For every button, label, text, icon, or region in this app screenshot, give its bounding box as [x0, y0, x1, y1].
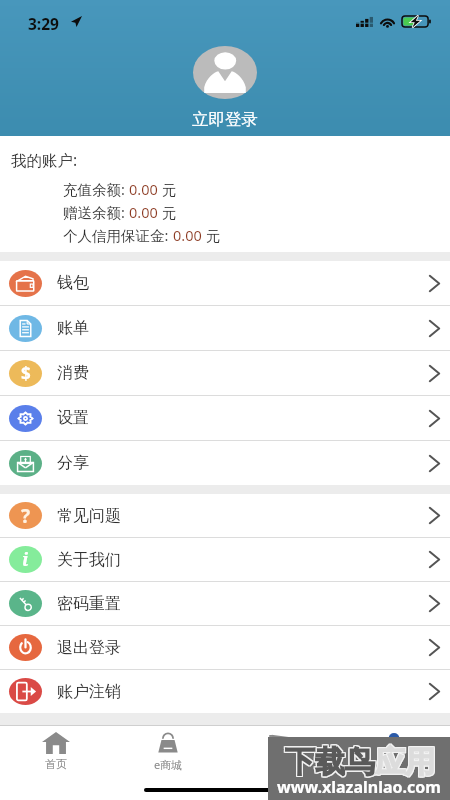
staticText: 充值余额: [63, 179, 129, 199]
button[interactable]: 退出登录 [0, 626, 450, 669]
button[interactable]: 设置 [0, 396, 450, 440]
staticText: 我的账户: [11, 149, 78, 170]
staticText: e商城 [154, 757, 183, 772]
button[interactable]: Login avatar [193, 46, 257, 99]
button[interactable]: 购物车 [224, 726, 337, 800]
staticText: 下载鸟应用 [284, 742, 434, 780]
button[interactable]: 账户注销 [0, 670, 450, 713]
staticText: 赠送余额: [63, 202, 129, 222]
staticText: 账单 [57, 318, 89, 338]
staticText: www.xlazalnlao.com [277, 776, 441, 798]
staticText: ? [21, 503, 31, 529]
button[interactable]: 分享 [0, 441, 450, 485]
staticText: 首页 [45, 757, 67, 771]
button[interactable]: 立即登录 [192, 109, 258, 130]
staticText: 元 [202, 225, 221, 245]
staticText: 0.00 [129, 202, 158, 222]
staticText: 分享 [57, 453, 89, 473]
staticText: 消费 [57, 363, 89, 383]
staticText: 应用 [375, 743, 435, 781]
staticText: 钱包 [57, 273, 89, 293]
staticText: $ [21, 362, 31, 385]
staticText: 下载鸟应用 [286, 744, 436, 782]
staticText: 下载鸟 [285, 743, 375, 781]
button[interactable]: 钱包 [0, 261, 450, 305]
button[interactable]: 首页 [0, 726, 112, 800]
staticText: 常见问题 [57, 506, 121, 526]
staticText: 密码重置 [57, 594, 121, 614]
button[interactable]: 账单 [0, 306, 450, 350]
button[interactable]: i [0, 538, 450, 581]
staticText: 关于我们 [57, 550, 121, 570]
staticText: 退出登录 [57, 638, 121, 658]
staticText: 0.00 [173, 225, 202, 245]
staticText: 个人信用保证金: [63, 225, 173, 245]
button[interactable]: $ [0, 351, 450, 395]
staticText: 元 [158, 179, 177, 199]
staticText: 下载鸟应用 [286, 742, 436, 780]
staticText: 3:29 [28, 13, 59, 34]
staticText: i [22, 547, 29, 572]
staticText: 设置 [57, 408, 89, 428]
button[interactable]: 密码重置 [0, 582, 450, 625]
staticText: 下载鸟应用 [284, 743, 434, 781]
button[interactable]: 我的 [337, 726, 450, 800]
staticText: 账户注销 [57, 682, 121, 702]
staticText: 下载鸟应用 [285, 742, 435, 780]
button[interactable]: e商城 [112, 726, 224, 800]
staticText: 0.00 [129, 179, 158, 199]
staticText: 下载鸟应用 [284, 744, 434, 782]
staticText: 下载鸟应用 [286, 743, 436, 781]
staticText: 下载鸟应用 [285, 744, 435, 782]
button[interactable]: ? [0, 494, 450, 537]
staticText: 元 [158, 202, 177, 222]
